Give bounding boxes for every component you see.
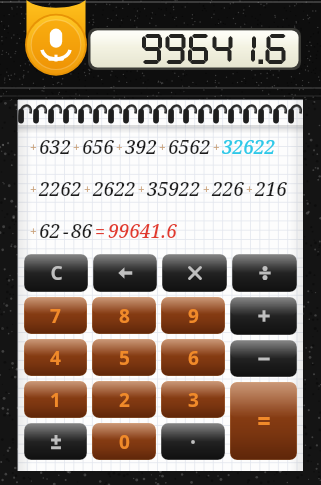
staticText: 6 <box>188 345 199 371</box>
staticText: + <box>246 181 253 197</box>
staticText: + <box>213 139 220 155</box>
staticText: 86 <box>71 218 93 244</box>
button[interactable]: 7 <box>24 297 87 334</box>
staticText: 7 <box>50 303 61 329</box>
staticText: 9 <box>188 303 199 329</box>
staticText: + <box>30 181 37 197</box>
button[interactable]: 3 <box>161 381 225 418</box>
staticText: = <box>95 219 106 244</box>
staticText: 656 <box>82 134 114 160</box>
staticText: 632 <box>39 134 71 160</box>
staticText: 32622 <box>222 134 276 160</box>
staticText: 62 <box>39 218 61 244</box>
staticText: 226 <box>212 176 244 202</box>
staticText: + <box>84 181 91 197</box>
button[interactable]: Voice input <box>20 0 92 86</box>
staticText: + <box>159 139 166 155</box>
staticText: 2 <box>119 387 130 413</box>
staticText: + <box>138 181 145 197</box>
staticText: 2622 <box>93 176 136 202</box>
staticText: + <box>203 181 210 197</box>
staticText: 2262 <box>39 176 82 202</box>
staticText: 35922 <box>147 176 201 202</box>
button[interactable]: 1 <box>24 381 87 418</box>
staticText: 216 <box>255 176 287 202</box>
button[interactable]: 5 <box>92 339 156 376</box>
staticText: 0 <box>119 429 130 455</box>
button[interactable]: 0 <box>92 423 156 460</box>
button[interactable]: Backspace <box>93 254 157 292</box>
staticText: - <box>63 219 69 244</box>
button[interactable]: Subtract <box>230 340 297 377</box>
staticText: 4 <box>50 345 61 371</box>
button[interactable]: 2 <box>92 381 156 418</box>
button[interactable]: Equals <box>230 382 297 460</box>
button[interactable]: Sign <box>24 423 87 460</box>
button[interactable]: 4 <box>24 339 87 376</box>
staticText: 5 <box>119 345 130 371</box>
staticText: 6562 <box>168 134 211 160</box>
staticText: C <box>50 260 63 286</box>
button[interactable]: 6 <box>161 339 225 376</box>
staticText: + <box>73 139 80 155</box>
button[interactable]: Add <box>230 297 297 335</box>
button[interactable]: C <box>24 254 88 292</box>
staticText: + <box>30 223 37 239</box>
staticText: 392 <box>125 134 157 160</box>
button[interactable]: 8 <box>92 297 156 334</box>
button[interactable]: Divide <box>232 254 297 292</box>
staticText: 99641.6 <box>108 218 177 244</box>
staticText: 1 <box>50 387 61 413</box>
staticText: + <box>116 139 123 155</box>
staticText: 3 <box>188 387 199 413</box>
staticText: 8 <box>119 303 130 329</box>
button[interactable]: Decimal point <box>161 423 225 460</box>
button[interactable]: 9 <box>161 297 225 334</box>
button[interactable]: Multiply <box>162 254 227 292</box>
staticText: + <box>30 139 37 155</box>
